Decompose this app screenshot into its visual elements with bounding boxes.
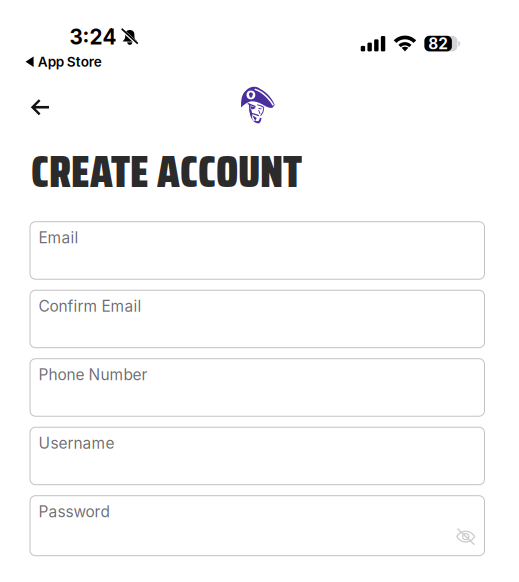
button[interactable]: Back (19, 90, 61, 125)
button[interactable]: Phone Number (30, 359, 484, 416)
staticText: Password (38, 502, 109, 521)
button[interactable]: Email (30, 222, 484, 279)
staticText: Username (38, 434, 114, 452)
staticText: Email (38, 228, 78, 247)
staticText: CREATE ACCOUNT (31, 137, 302, 206)
staticText: App Store (38, 53, 102, 70)
staticText: Phone Number (38, 365, 147, 384)
button[interactable]: Username (30, 427, 484, 485)
staticText: 82 (428, 34, 448, 53)
button[interactable]: App Store (25, 53, 102, 70)
button[interactable]: Confirm Email (30, 290, 484, 348)
button[interactable]: Password (30, 496, 484, 556)
staticText: 3:24 (69, 25, 116, 50)
staticText: Confirm Email (38, 297, 141, 315)
